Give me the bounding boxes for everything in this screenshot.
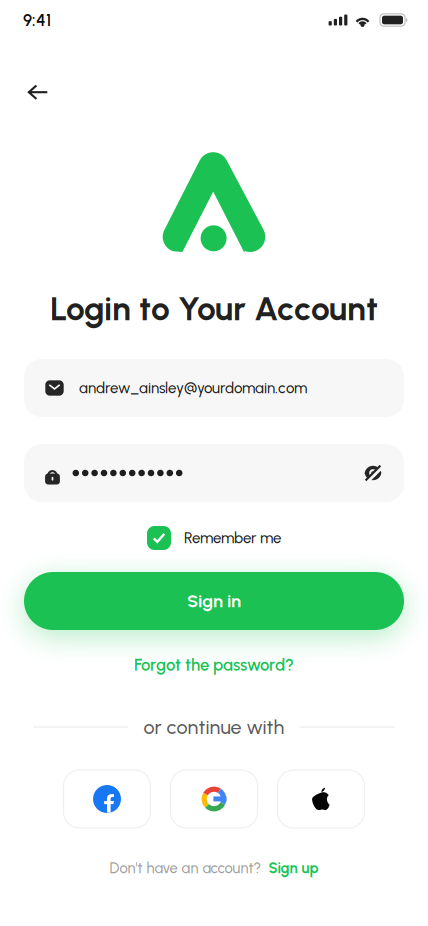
button[interactable]: Show password xyxy=(357,457,389,489)
button[interactable]: Sign in xyxy=(24,572,404,630)
staticText: Remember me xyxy=(184,529,281,547)
staticText: Sign up xyxy=(268,859,318,877)
staticText: andrew_ainsley@yourdomain.com xyxy=(79,379,307,397)
staticText: Sign in xyxy=(187,590,241,612)
staticText: 9:41 xyxy=(23,10,51,30)
button[interactable]: Continue with Google xyxy=(170,770,257,828)
button[interactable]: Remember me xyxy=(142,521,286,555)
staticText: Forgot the password? xyxy=(134,655,294,675)
staticText: or continue with xyxy=(143,715,284,739)
button[interactable]: Back xyxy=(16,70,60,114)
button[interactable]: Forgot the password? xyxy=(129,650,299,680)
staticText: Don't have an account? xyxy=(109,859,261,877)
button[interactable]: Continue with Facebook xyxy=(63,770,150,828)
button[interactable]: Sign up xyxy=(261,859,318,877)
staticText: Login to Your Account xyxy=(50,288,378,329)
button[interactable]: Continue with Apple xyxy=(277,770,364,828)
